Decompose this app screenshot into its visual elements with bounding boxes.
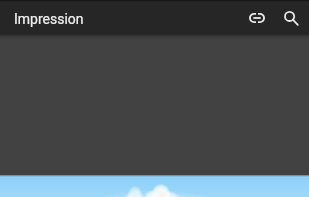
button[interactable]: Search <box>275 2 308 34</box>
button[interactable]: Link <box>240 2 273 34</box>
staticText: Impression <box>14 11 84 27</box>
